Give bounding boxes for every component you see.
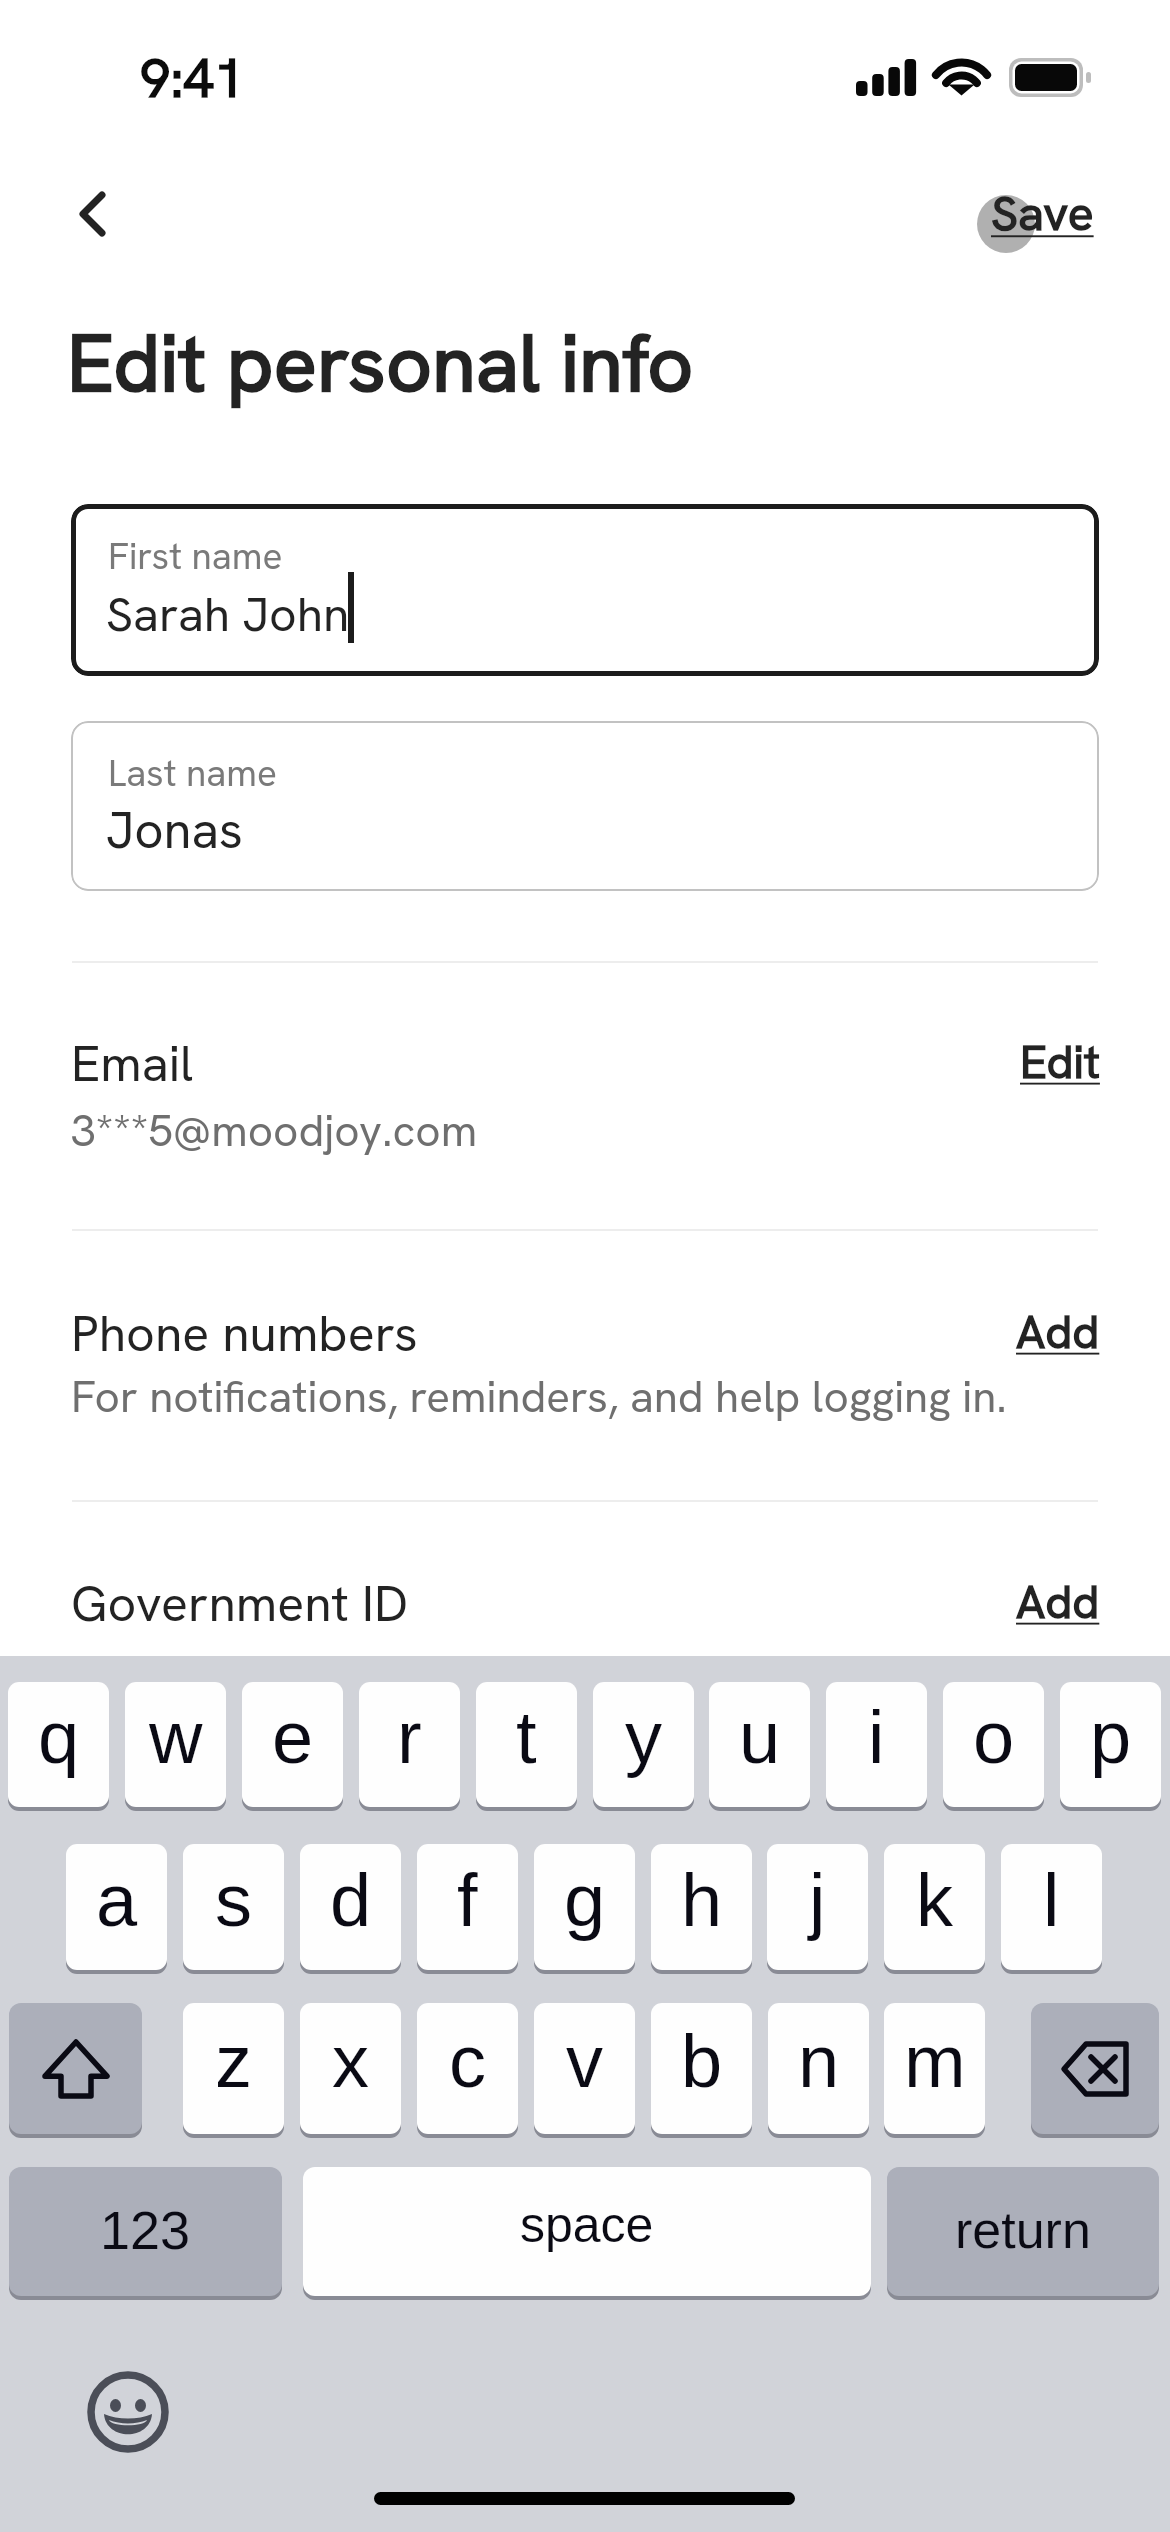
button[interactable]: e (242, 1682, 343, 1807)
button[interactable]: t (476, 1682, 577, 1807)
staticText: t (516, 1696, 537, 1779)
button[interactable]: k (884, 1844, 985, 1970)
staticText: Email (71, 1031, 194, 1096)
button[interactable]: return (887, 2167, 1159, 2296)
staticText: Government ID (71, 1571, 409, 1636)
button[interactable]: Add (940, 1565, 1100, 1639)
button[interactable]: g (534, 1844, 635, 1970)
button[interactable]: Shift (9, 2003, 142, 2134)
button[interactable]: Backspace (1031, 2003, 1159, 2134)
button[interactable]: Add (940, 1295, 1100, 1369)
button[interactable]: b (651, 2003, 752, 2134)
staticText: Sarah John (106, 583, 350, 646)
button[interactable]: j (767, 1844, 868, 1970)
staticText: Add (1016, 1572, 1100, 1632)
button[interactable]: Edit (940, 1025, 1100, 1099)
button[interactable]: x (300, 2003, 401, 2134)
staticText: x (332, 2020, 369, 2103)
button[interactable]: l (1001, 1844, 1102, 1970)
staticText: s (215, 1859, 252, 1942)
staticText: Phone numbers (71, 1301, 418, 1366)
staticText: n (798, 2020, 840, 2103)
button[interactable]: c (417, 2003, 518, 2134)
button[interactable]: First name (71, 504, 1099, 676)
staticText: Save (991, 182, 1094, 245)
staticText: d (330, 1859, 372, 1942)
staticText: b (681, 2020, 723, 2103)
staticText: h (681, 1859, 723, 1942)
button[interactable]: Save (955, 178, 1130, 270)
button[interactable]: m (884, 2003, 985, 2134)
staticText: space (520, 2197, 654, 2253)
staticText: l (1043, 1859, 1060, 1942)
button[interactable]: q (8, 1682, 109, 1807)
staticText: w (149, 1696, 203, 1779)
staticText: 3***5@moodjoy.com (71, 1102, 478, 1159)
button[interactable]: v (534, 2003, 635, 2134)
button[interactable]: f (417, 1844, 518, 1970)
button[interactable]: w (125, 1682, 226, 1807)
staticText: r (397, 1696, 422, 1779)
staticText: Not provided (71, 1643, 328, 1700)
button[interactable]: a (66, 1844, 167, 1970)
button[interactable]: space (303, 2167, 871, 2296)
button[interactable]: Back (40, 170, 130, 260)
button[interactable]: s (183, 1844, 284, 1970)
staticText: o (973, 1696, 1015, 1779)
button[interactable]: Emoji keyboard (75, 2359, 180, 2464)
staticText: Edit personal info (67, 311, 694, 415)
button[interactable]: y (593, 1682, 694, 1807)
staticText: j (809, 1859, 826, 1942)
button[interactable]: Last name (71, 721, 1099, 891)
staticText: Add (1016, 1302, 1100, 1362)
button[interactable]: i (826, 1682, 927, 1807)
staticText: i (868, 1696, 885, 1779)
staticText: c (449, 2020, 486, 2103)
staticText: m (904, 2020, 966, 2103)
staticText: p (1090, 1696, 1132, 1779)
staticText: g (564, 1859, 606, 1942)
button[interactable]: z (183, 2003, 284, 2134)
staticText: 9:41 (140, 43, 245, 113)
button[interactable]: r (359, 1682, 460, 1807)
staticText: 123 (100, 2200, 191, 2260)
button[interactable]: 123 (9, 2167, 282, 2296)
button[interactable]: n (768, 2003, 869, 2134)
staticText: f (457, 1859, 478, 1942)
button[interactable]: o (943, 1682, 1044, 1807)
button[interactable]: h (651, 1844, 752, 1970)
staticText: z (215, 2020, 252, 2103)
staticText: Edit (1020, 1032, 1100, 1092)
staticText: e (272, 1696, 314, 1779)
button[interactable]: d (300, 1844, 401, 1970)
staticText: Last name (108, 749, 277, 797)
staticText: Jonas (106, 797, 243, 863)
staticText: First name (108, 532, 283, 580)
staticText: a (96, 1859, 138, 1942)
staticText: u (739, 1696, 781, 1779)
staticText: k (916, 1859, 953, 1942)
button[interactable]: p (1060, 1682, 1161, 1807)
button[interactable]: u (709, 1682, 810, 1807)
staticText: q (38, 1696, 80, 1779)
staticText: y (625, 1696, 662, 1779)
staticText: return (955, 2201, 1091, 2259)
staticText: v (566, 2020, 603, 2103)
staticText: For notifications, reminders, and help l… (71, 1368, 1007, 1425)
